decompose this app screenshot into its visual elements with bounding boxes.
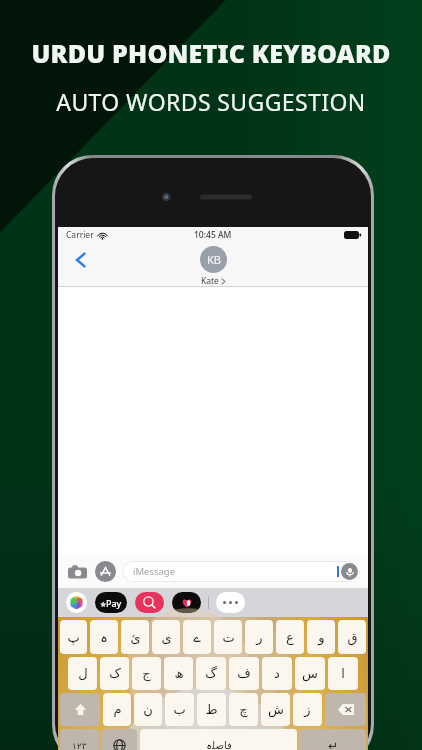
staticText: ی	[161, 630, 172, 645]
button[interactable]: ↵	[300, 729, 366, 750]
button[interactable]: گ	[196, 657, 226, 690]
button[interactable]: ی	[152, 620, 180, 654]
button[interactable]: ا	[328, 657, 358, 690]
staticText: iMessage	[133, 565, 176, 578]
button[interactable]: Dictate	[341, 563, 358, 580]
staticText: پ	[67, 630, 80, 645]
button[interactable]: ک	[100, 657, 129, 690]
button[interactable]: ف	[229, 657, 259, 690]
button[interactable]: چ	[229, 693, 258, 726]
staticText: م	[113, 702, 122, 717]
staticText: ع	[286, 630, 294, 645]
staticText: و	[318, 630, 325, 645]
button[interactable]: Image search	[135, 592, 164, 613]
staticText: ج	[142, 666, 151, 681]
button[interactable]: App Store	[95, 561, 116, 582]
button[interactable]: ل	[68, 657, 97, 690]
button[interactable]: فاصلہ	[140, 729, 297, 750]
staticText: ل	[78, 666, 88, 681]
staticText: ف	[237, 666, 251, 681]
staticText: URDU PHONETIC KEYBOARD	[31, 36, 391, 70]
staticText: ا	[341, 666, 345, 681]
button[interactable]: Photos	[66, 592, 87, 613]
button[interactable]: Camera	[66, 561, 88, 583]
button[interactable]: د	[262, 657, 292, 690]
button[interactable]: ت	[214, 620, 242, 654]
staticText: ن	[143, 702, 153, 717]
staticText: 10:45 AM	[194, 229, 232, 241]
button[interactable]: ن	[134, 693, 162, 726]
button[interactable]: KB	[200, 246, 227, 287]
button[interactable]: ے	[183, 620, 211, 654]
staticText: ز	[304, 702, 311, 717]
button[interactable]: پ	[60, 620, 87, 654]
button[interactable]: ہ	[90, 620, 118, 654]
staticText: ئ	[130, 630, 141, 645]
staticText: د	[274, 666, 280, 681]
staticText: Kate	[201, 275, 219, 287]
staticText: ھ	[174, 666, 184, 681]
staticText: Pay	[100, 597, 122, 609]
staticText: ۱۲۳	[72, 741, 87, 750]
staticText: ↵	[328, 739, 339, 750]
button[interactable]: ط	[197, 693, 226, 726]
staticText: ر	[256, 630, 263, 645]
button[interactable]: More apps	[216, 592, 245, 613]
staticText: AUTO WORDS SUGGESTION	[56, 86, 366, 117]
button[interactable]: ب	[165, 693, 194, 726]
button[interactable]: Back	[68, 247, 94, 273]
staticText: ط	[205, 702, 218, 717]
button[interactable]: ئ	[121, 620, 149, 654]
button[interactable]: ھ	[164, 657, 193, 690]
button[interactable]: Backspace	[325, 693, 366, 726]
button[interactable]: ع	[276, 620, 304, 654]
staticText: ب	[173, 702, 186, 717]
staticText: ہ	[100, 630, 108, 645]
button[interactable]: Digital Touch	[172, 592, 201, 613]
button[interactable]: iMessage	[123, 561, 360, 582]
staticText: گ	[205, 666, 217, 681]
button[interactable]: ق	[338, 620, 366, 654]
button[interactable]: م	[103, 693, 131, 726]
staticText: KB	[207, 252, 221, 267]
button[interactable]: Shift	[60, 693, 100, 726]
staticText: ش	[268, 702, 284, 717]
button[interactable]: ر	[245, 620, 273, 654]
button[interactable]: و	[307, 620, 335, 654]
staticText: ق	[347, 630, 358, 645]
staticText: ک	[109, 666, 121, 681]
staticText: چ	[239, 702, 248, 717]
staticText: ے	[193, 630, 201, 645]
staticText: ت	[222, 630, 235, 645]
staticText: س	[302, 666, 318, 681]
button[interactable]: Switch keyboard	[102, 729, 137, 750]
staticText: فاصلہ	[206, 740, 232, 750]
button[interactable]: ش	[261, 693, 290, 726]
button[interactable]: ز	[293, 693, 322, 726]
staticText: Carrier	[66, 229, 94, 241]
button[interactable]: س	[295, 657, 325, 690]
button[interactable]: Apple Pay	[95, 592, 127, 613]
button[interactable]: ج	[132, 657, 161, 690]
button[interactable]: ۱۲۳	[60, 729, 99, 750]
